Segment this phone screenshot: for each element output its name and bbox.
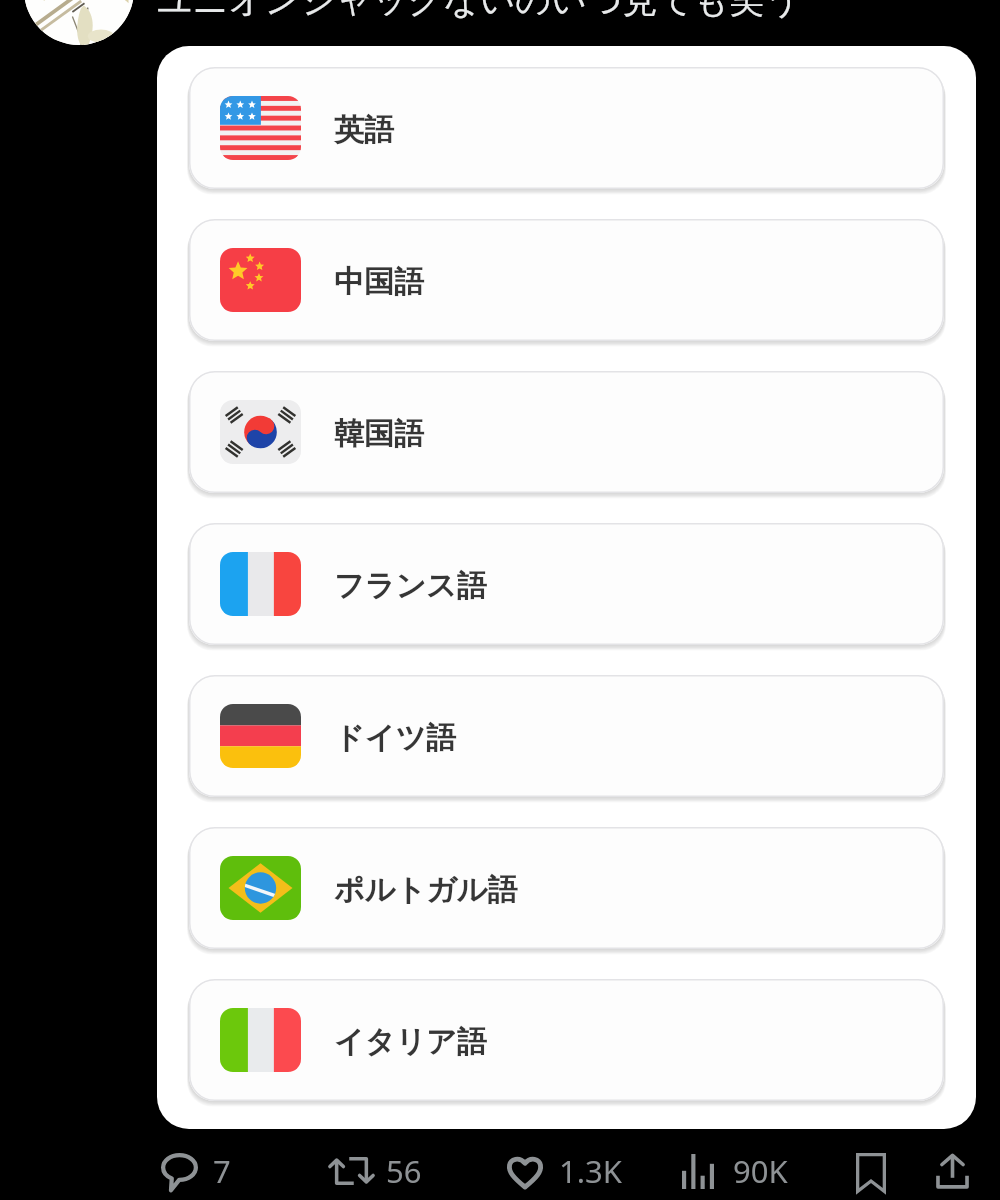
button[interactable]: 韓国語 [189, 371, 944, 493]
button[interactable]: イタリア語 [189, 979, 944, 1101]
staticText: 7 [213, 1150, 231, 1192]
button[interactable]: Share [926, 1140, 979, 1200]
button[interactable]: Profile picture [24, 0, 134, 45]
button[interactable]: Reply [150, 1140, 250, 1200]
button[interactable]: Like [495, 1140, 625, 1200]
button[interactable]: Bookmark [846, 1140, 896, 1200]
staticText: ユニオンジャックないのいつ見ても笑う [157, 0, 801, 22]
button[interactable]: 中国語 [189, 219, 944, 341]
staticText: 英語 [334, 111, 394, 149]
staticText: フランス語 [334, 567, 487, 605]
staticText: ポルトガル語 [334, 871, 518, 909]
button[interactable]: Repost [320, 1140, 430, 1200]
staticText: 90K [733, 1150, 788, 1192]
staticText: ドイツ語 [334, 719, 457, 757]
button[interactable]: ポルトガル語 [189, 827, 944, 949]
staticText: 56 [386, 1150, 422, 1192]
button[interactable]: 英語 [189, 67, 944, 189]
button[interactable]: Views [672, 1140, 797, 1200]
button[interactable]: ドイツ語 [189, 675, 944, 797]
staticText: 中国語 [334, 263, 424, 301]
button[interactable]: フランス語 [189, 523, 944, 645]
staticText: 1.3K [559, 1150, 622, 1192]
staticText: イタリア語 [334, 1023, 487, 1061]
staticText: 韓国語 [334, 415, 424, 453]
